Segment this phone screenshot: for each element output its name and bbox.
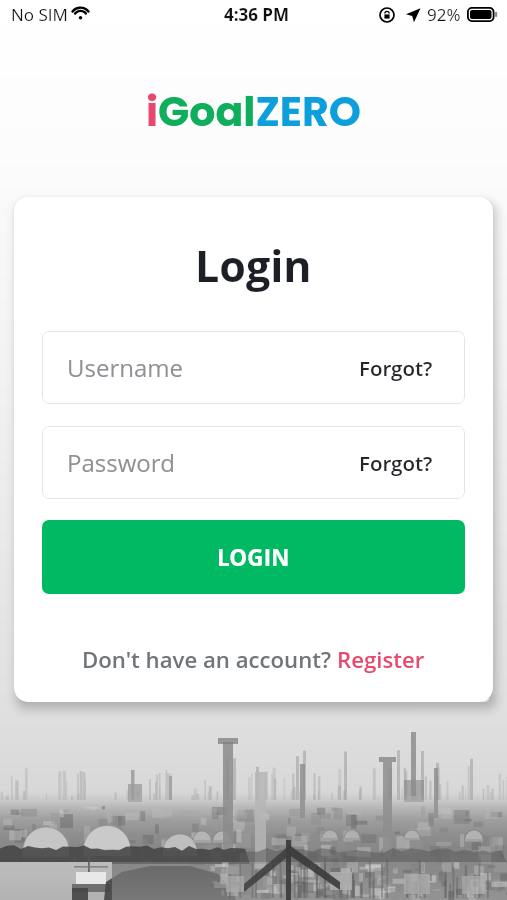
button[interactable]: Password xyxy=(42,426,465,499)
button[interactable]: Register xyxy=(337,644,425,674)
staticText: iGoalZERO xyxy=(146,83,361,140)
button[interactable]: LOGIN xyxy=(42,520,465,594)
staticText: Don't have an account? xyxy=(82,644,337,674)
staticText: Register xyxy=(337,644,425,674)
button[interactable]: Username xyxy=(42,331,465,404)
staticText: LOGIN xyxy=(217,542,290,572)
staticText: No SIM xyxy=(11,3,68,26)
staticText: Password xyxy=(67,446,175,479)
staticText: Username xyxy=(67,351,184,384)
staticText: Forgot? xyxy=(359,449,433,477)
staticText: 4:36 PM xyxy=(224,3,290,26)
staticText: Login xyxy=(195,236,312,295)
staticText: 92% xyxy=(427,3,461,26)
staticText: Forgot? xyxy=(359,354,433,382)
